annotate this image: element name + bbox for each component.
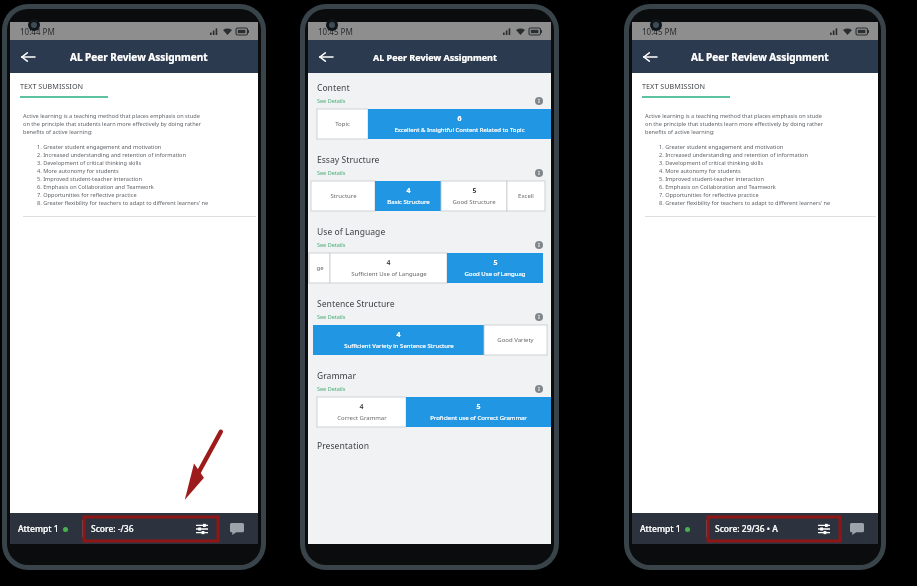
staticText: 5. Improved student-teacher interaction [659, 175, 764, 183]
staticText: 3. Development of critical thinking skil… [659, 159, 764, 167]
staticText: Good Use of Languag [464, 270, 526, 278]
staticText: Excell [518, 192, 534, 200]
staticText: ge [316, 264, 324, 272]
button[interactable]: Show rubric [818, 523, 830, 535]
button[interactable]: 5 [441, 181, 507, 211]
button[interactable]: Score: -/36 [91, 523, 216, 535]
staticText: Basic Structure [387, 198, 430, 206]
button[interactable]: 4 [317, 397, 406, 427]
staticText: Sentence Structure [317, 298, 395, 310]
staticText: Attempt 1 [18, 523, 59, 535]
staticText: Structure [330, 192, 357, 200]
staticText: 5 [472, 186, 477, 196]
staticText: on the principle that students learn mor… [23, 120, 202, 128]
staticText: Presentation [317, 440, 370, 452]
button[interactable]: Info [535, 169, 543, 177]
staticText: Correct Grammar [337, 414, 387, 422]
staticText: benefits of active learning: [23, 128, 93, 136]
button[interactable]: 5 [447, 253, 543, 283]
button[interactable]: See Details [317, 97, 346, 104]
staticText: Score: -/36 [91, 523, 134, 535]
staticText: Proficient use of Correct Grammar [430, 414, 527, 422]
staticText: 1. Greater student engagement and motiva… [659, 143, 784, 151]
staticText: AL Peer Review Assignment [691, 50, 829, 64]
staticText: benefits of active learning: [645, 128, 715, 136]
button[interactable]: Info [535, 97, 543, 105]
staticText: Good Structure [452, 198, 496, 206]
button[interactable]: ge [309, 253, 330, 283]
button[interactable]: Attempt 1 [640, 523, 690, 535]
button[interactable]: Excell [507, 181, 545, 211]
staticText: Essay Structure [317, 154, 380, 166]
staticText: 5 [476, 402, 481, 412]
staticText: 7. Opportunities for reflective practice [37, 191, 137, 199]
button[interactable]: Score: 29/36 • A [715, 523, 838, 535]
button[interactable]: Comments [230, 523, 244, 535]
button[interactable]: Comments [850, 523, 864, 535]
staticText: 4. More autonomy for students [659, 167, 741, 175]
staticText: 8. Greater flexibility for teachers to a… [37, 199, 209, 207]
staticText: 10:45 PM [642, 26, 677, 37]
staticText: 5 [493, 258, 498, 268]
button[interactable]: Attempt 1 [18, 523, 68, 535]
staticText: 6 [457, 114, 462, 124]
button[interactable]: 6 [368, 109, 551, 139]
button[interactable]: 4 [330, 253, 447, 283]
button[interactable]: Structure [311, 181, 375, 211]
staticText: Attempt 1 [640, 523, 681, 535]
staticText: Good Variety [497, 336, 534, 344]
button[interactable]: 5 [406, 397, 551, 427]
staticText: 3. Development of critical thinking skil… [37, 159, 142, 167]
button[interactable]: Back [313, 44, 339, 70]
button[interactable]: Info [535, 241, 543, 249]
button[interactable]: Info [535, 385, 543, 393]
button[interactable]: See Details [317, 313, 346, 320]
button[interactable]: 4 [375, 181, 441, 211]
staticText: on the principle that students learn mor… [645, 120, 824, 128]
staticText: 4 [406, 186, 411, 196]
staticText: TEXT SUBMISSION [642, 81, 706, 91]
staticText: TEXT SUBMISSION [20, 81, 84, 91]
staticText: AL Peer Review Assignment [373, 51, 497, 63]
staticText: 4 [396, 330, 401, 340]
staticText: 6. Emphasis on Collaboration and Teamwor… [37, 183, 154, 191]
staticText: Active learning is a teaching method tha… [645, 112, 822, 120]
staticText: 4 [359, 402, 364, 412]
button[interactable]: See Details [317, 385, 346, 392]
button[interactable]: Good Variety [484, 325, 547, 355]
staticText: Score: 29/36 • A [715, 523, 778, 535]
staticText: 7. Opportunities for reflective practice [659, 191, 759, 199]
staticText: 4. More autonomy for students [37, 167, 119, 175]
button[interactable]: Info [535, 313, 543, 321]
staticText: 6. Emphasis on Collaboration and Teamwor… [659, 183, 776, 191]
button[interactable]: See Details [317, 169, 346, 176]
staticText: Excellent & Insightful Content Related t… [394, 126, 525, 134]
staticText: 8. Greater flexibility for teachers to a… [659, 199, 831, 207]
staticText: AL Peer Review Assignment [70, 50, 208, 64]
staticText: 5. Improved student-teacher interaction [37, 175, 142, 183]
staticText: Active learning is a teaching method tha… [23, 112, 200, 120]
button[interactable]: Show rubric [196, 523, 208, 535]
staticText: Topic [335, 120, 350, 128]
button[interactable]: See Details [317, 241, 346, 248]
staticText: Sufficient Variety in Sentence Structure [344, 342, 454, 350]
staticText: Content [317, 82, 350, 94]
button[interactable]: Back [15, 44, 41, 70]
button[interactable]: Back [637, 44, 663, 70]
button[interactable]: TEXT SUBMISSION [20, 81, 108, 98]
button[interactable]: 4 [313, 325, 484, 355]
staticText: Sufficient Use of Language [351, 270, 427, 278]
button[interactable]: Topic [317, 109, 368, 139]
staticText: Use of Language [317, 226, 386, 238]
staticText: 1. Greater student engagement and motiva… [37, 143, 162, 151]
staticText: 10:44 PM [20, 26, 55, 37]
staticText: 4 [386, 258, 391, 268]
staticText: 2. Increased understanding and retention… [659, 151, 808, 159]
staticText: 10:45 PM [318, 26, 353, 37]
staticText: 2. Increased understanding and retention… [37, 151, 186, 159]
staticText: Grammar [317, 370, 357, 382]
button[interactable]: TEXT SUBMISSION [642, 81, 730, 98]
